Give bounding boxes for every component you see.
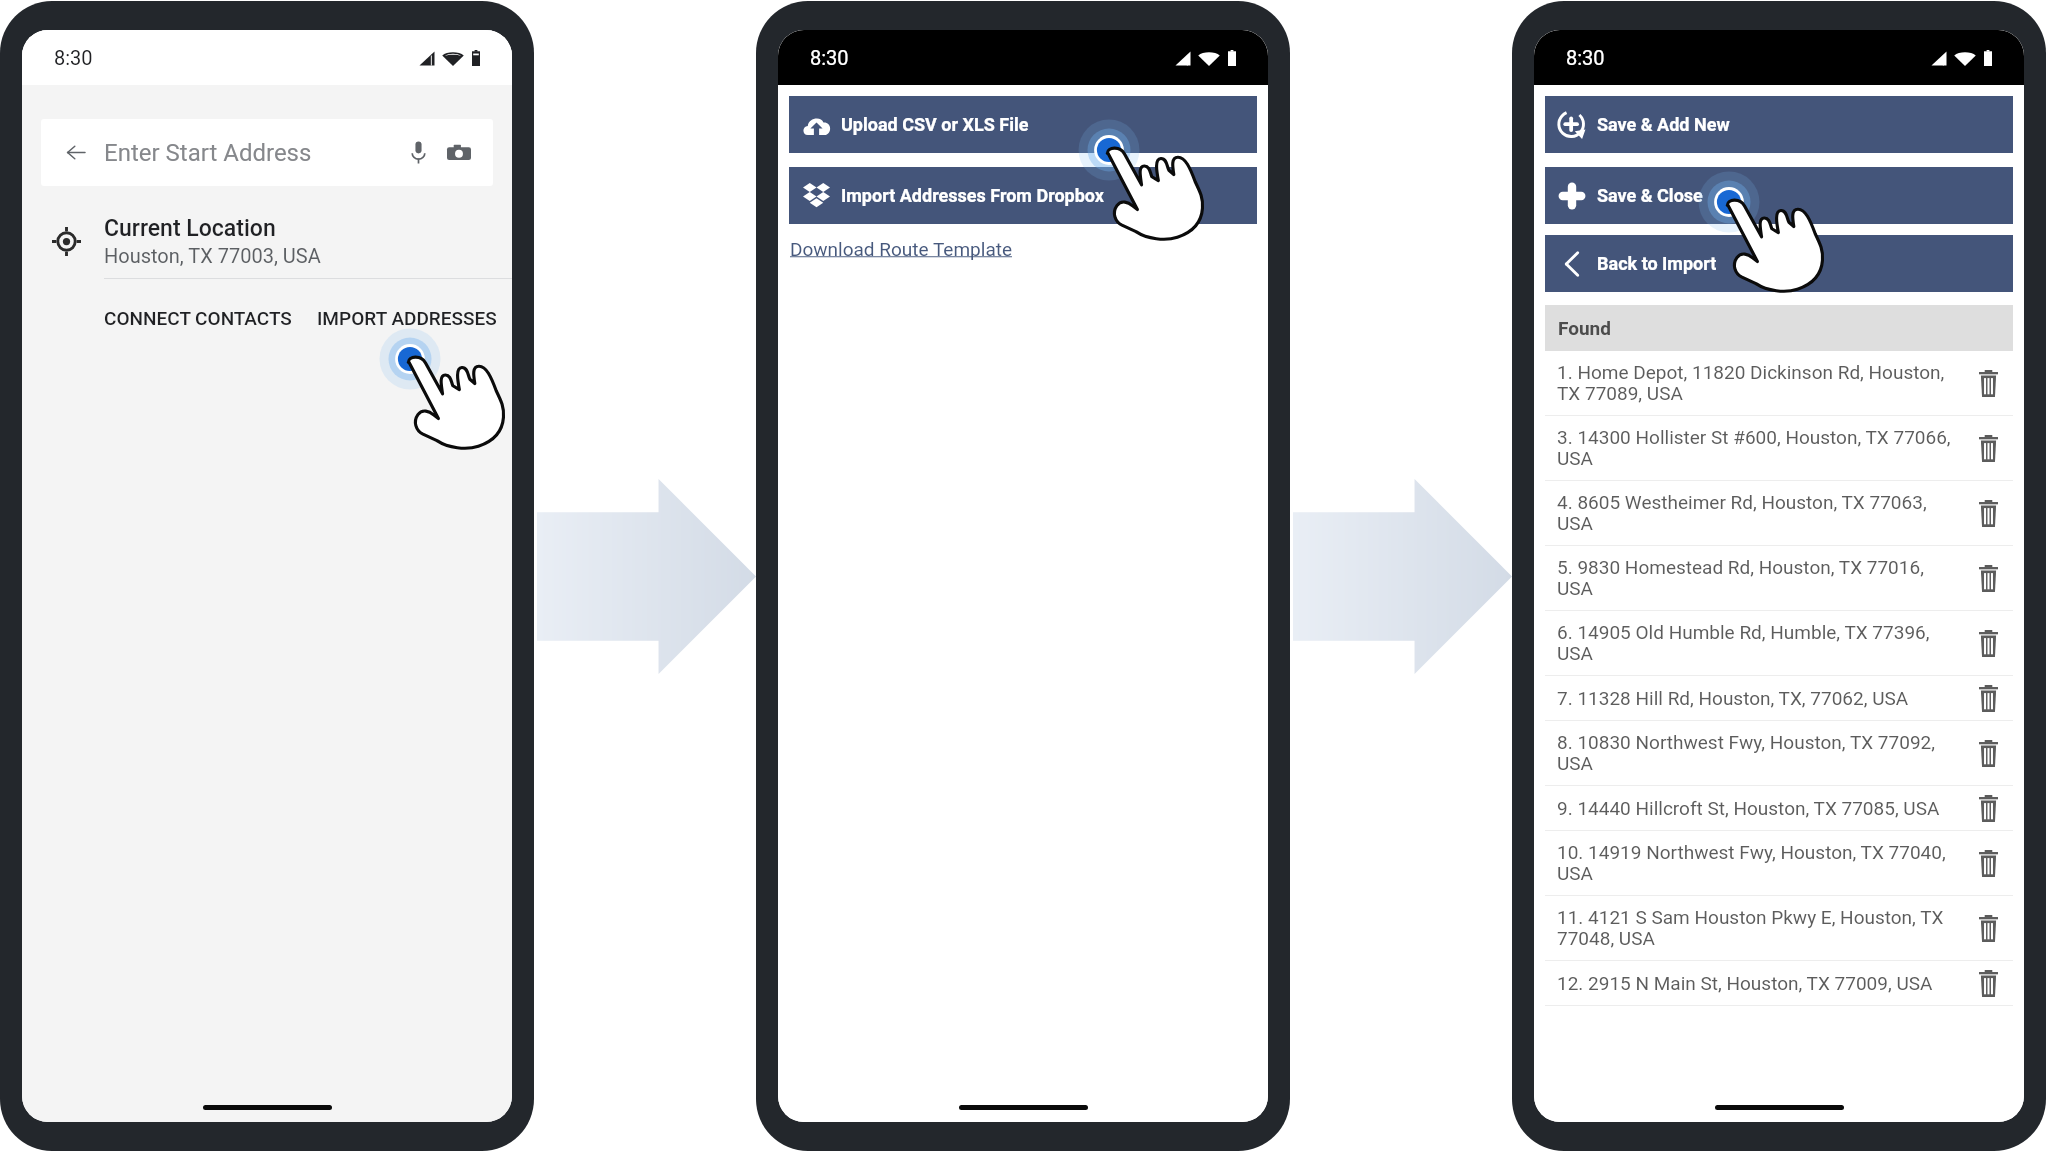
staticText: Houston, TX 77003, USA: [104, 244, 321, 267]
staticText: 8:30: [54, 46, 93, 69]
staticText: 7. 11328 Hill Rd, Houston, TX, 77062, US…: [1557, 687, 1957, 709]
button[interactable]: Back to Import: [1545, 235, 2013, 292]
staticText: 1. Home Depot, 11820 Dickinson Rd, Houst…: [1557, 361, 1957, 405]
staticText: IMPORT ADDRESSES: [317, 307, 497, 329]
button[interactable]: 12. 2915 N Main St, Houston, TX 77009, U…: [1534, 961, 2024, 1005]
staticText: 11. 4121 S Sam Houston Pkwy E, Houston, …: [1557, 906, 1957, 950]
staticText: 8:30: [810, 46, 849, 69]
staticText: CONNECT CONTACTS: [104, 307, 292, 329]
button[interactable]: Download Route Template: [788, 235, 1015, 263]
button[interactable]: Delete: [1979, 565, 1998, 592]
button[interactable]: 10. 14919 Northwest Fwy, Houston, TX 770…: [1534, 831, 2024, 895]
staticText: Save & Close: [1597, 185, 1703, 206]
button[interactable]: 8. 10830 Northwest Fwy, Houston, TX 7709…: [1534, 721, 2024, 785]
staticText: Download Route Template: [790, 238, 1013, 260]
staticText: 8. 10830 Northwest Fwy, Houston, TX 7709…: [1557, 731, 1957, 775]
button[interactable]: 1. Home Depot, 11820 Dickinson Rd, Houst…: [1534, 351, 2024, 415]
button[interactable]: 5. 9830 Homestead Rd, Houston, TX 77016,…: [1534, 546, 2024, 610]
button[interactable]: Voice search: [410, 141, 427, 164]
staticText: Upload CSV or XLS File: [841, 114, 1029, 135]
button[interactable]: Delete: [1979, 740, 1998, 767]
staticText: 12. 2915 N Main St, Houston, TX 77009, U…: [1557, 972, 1957, 994]
button[interactable]: 4. 8605 Westheimer Rd, Houston, TX 77063…: [1534, 481, 2024, 545]
button[interactable]: Back: [41, 119, 493, 186]
button[interactable]: Delete: [1979, 915, 1998, 942]
staticText: Save & Add New: [1597, 114, 1730, 135]
button[interactable]: CONNECT CONTACTS: [90, 300, 306, 336]
staticText: 8:30: [1566, 46, 1605, 69]
button[interactable]: Camera: [447, 142, 471, 164]
button[interactable]: Delete: [1979, 850, 1998, 877]
button[interactable]: Delete: [1979, 435, 1998, 462]
button[interactable]: Import Addresses From Dropbox: [789, 167, 1257, 224]
button[interactable]: Current Location: [22, 204, 512, 278]
staticText: 3. 14300 Hollister St #600, Houston, TX …: [1557, 426, 1957, 470]
button[interactable]: Delete: [1979, 685, 1998, 712]
staticText: Found: [1558, 317, 1611, 339]
button[interactable]: 6. 14905 Old Humble Rd, Humble, TX 77396…: [1534, 611, 2024, 675]
button[interactable]: Delete: [1979, 500, 1998, 527]
button[interactable]: Upload CSV or XLS File: [789, 96, 1257, 153]
button[interactable]: 11. 4121 S Sam Houston Pkwy E, Houston, …: [1534, 896, 2024, 960]
staticText: 5. 9830 Homestead Rd, Houston, TX 77016,…: [1557, 556, 1957, 600]
staticText: 10. 14919 Northwest Fwy, Houston, TX 770…: [1557, 841, 1957, 885]
button[interactable]: Save & Close: [1545, 167, 2013, 224]
staticText: Import Addresses From Dropbox: [841, 185, 1105, 206]
button[interactable]: Delete: [1979, 370, 1998, 397]
button[interactable]: 3. 14300 Hollister St #600, Houston, TX …: [1534, 416, 2024, 480]
button[interactable]: IMPORT ADDRESSES: [303, 300, 511, 336]
button[interactable]: 7. 11328 Hill Rd, Houston, TX, 77062, US…: [1534, 676, 2024, 720]
button[interactable]: Delete: [1979, 630, 1998, 657]
button[interactable]: Delete: [1979, 970, 1998, 997]
button[interactable]: Back: [66, 143, 86, 162]
staticText: Enter Start Address: [104, 139, 312, 167]
staticText: Back to Import: [1597, 253, 1717, 274]
button[interactable]: Save & Add New: [1545, 96, 2013, 153]
staticText: 6. 14905 Old Humble Rd, Humble, TX 77396…: [1557, 621, 1957, 665]
button[interactable]: Delete: [1979, 795, 1998, 822]
staticText: 9. 14440 Hillcroft St, Houston, TX 77085…: [1557, 797, 1957, 819]
staticText: Current Location: [104, 215, 276, 242]
button[interactable]: 9. 14440 Hillcroft St, Houston, TX 77085…: [1534, 786, 2024, 830]
staticText: 4. 8605 Westheimer Rd, Houston, TX 77063…: [1557, 491, 1957, 535]
